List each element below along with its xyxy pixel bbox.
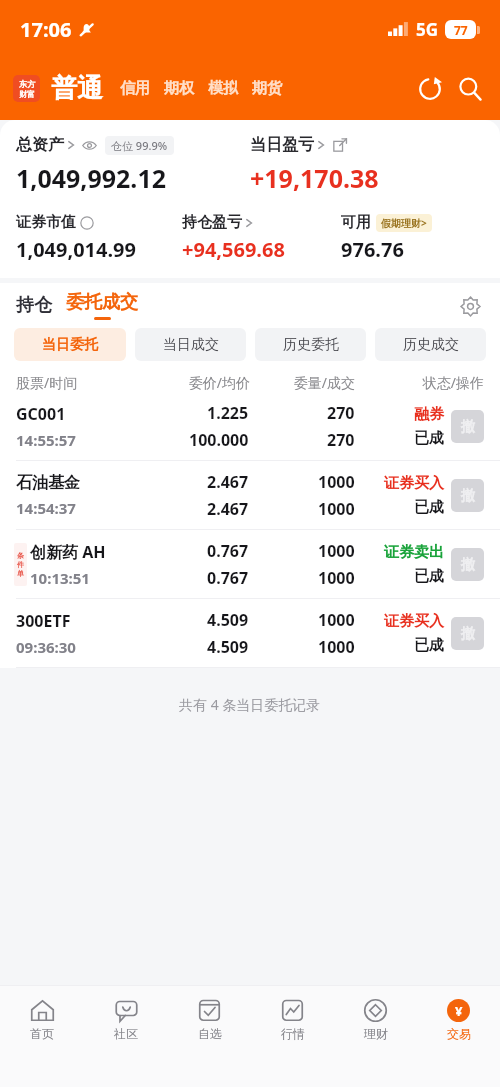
- staticText: 2.467: [207, 498, 249, 520]
- button[interactable]: 普通: [51, 72, 103, 105]
- staticText: 行情: [281, 1026, 305, 1041]
- staticText: 委量/成交: [250, 373, 355, 392]
- button[interactable]: 当日委托: [14, 328, 126, 361]
- staticText: 77: [454, 22, 468, 38]
- staticText: 4.509: [207, 609, 249, 631]
- button[interactable]: 持仓: [16, 294, 52, 317]
- button[interactable]: 东方财富: [13, 75, 40, 102]
- staticText: 1000: [318, 567, 355, 589]
- staticText: 证券买入: [384, 612, 444, 631]
- staticText: 14:54:37: [16, 498, 76, 518]
- staticText: 期权: [164, 79, 194, 98]
- staticText: 信用: [120, 79, 150, 98]
- staticText: 融券: [414, 405, 444, 424]
- staticText: 持仓: [16, 294, 52, 317]
- button[interactable]: Settings: [456, 292, 484, 320]
- staticText: 委托成交: [66, 291, 138, 314]
- button[interactable]: 当日成交: [135, 328, 246, 361]
- staticText: 仓位 99.9%: [111, 138, 168, 153]
- button[interactable]: 行情: [251, 986, 334, 1052]
- staticText: 期货: [252, 79, 282, 98]
- staticText: 270: [327, 402, 355, 424]
- staticText: 证券市值: [16, 213, 76, 232]
- staticText: 100.000: [189, 429, 249, 451]
- staticText: 已成: [414, 498, 444, 517]
- button[interactable]: Refresh: [414, 73, 445, 104]
- staticText: +94,569.68: [182, 236, 285, 263]
- staticText: 已成: [414, 429, 444, 448]
- button[interactable]: 期权: [157, 79, 201, 98]
- button[interactable]: 社区: [84, 986, 168, 1052]
- button[interactable]: 石油基金: [0, 461, 500, 530]
- staticText: 0.767: [207, 567, 249, 589]
- staticText: 模拟: [208, 79, 238, 98]
- staticText: 撤: [461, 625, 475, 643]
- staticText: 历史成交: [403, 336, 459, 354]
- staticText: 理财: [364, 1026, 388, 1041]
- staticText: 1000: [318, 540, 355, 562]
- staticText: 1000: [318, 498, 355, 520]
- staticText: +19,170.38: [250, 161, 379, 195]
- staticText: 普通: [51, 72, 103, 105]
- staticText: 交易: [447, 1026, 471, 1041]
- staticText: 10:13:51: [30, 568, 90, 588]
- staticText: 件: [17, 560, 24, 569]
- staticText: 5G: [416, 18, 439, 41]
- staticText: 东方: [19, 79, 35, 89]
- staticText: 证券买入: [384, 474, 444, 493]
- staticText: 假期理财>: [381, 216, 427, 230]
- staticText: 4.509: [207, 636, 249, 658]
- button[interactable]: 撤: [451, 548, 484, 581]
- staticText: 17:06: [20, 16, 72, 43]
- staticText: 证券卖出: [384, 543, 444, 562]
- staticText: 财富: [19, 89, 35, 99]
- staticText: 社区: [114, 1026, 138, 1041]
- staticText: 创新药 AH: [30, 541, 106, 563]
- button[interactable]: 撤: [451, 410, 484, 443]
- staticText: 委价/均价: [145, 373, 250, 392]
- button[interactable]: 历史成交: [375, 328, 486, 361]
- staticText: 当日盈亏: [250, 135, 314, 155]
- staticText: 1000: [318, 609, 355, 631]
- staticText: 270: [327, 429, 355, 451]
- staticText: 股票/时间: [16, 373, 145, 392]
- button[interactable]: 理财: [334, 986, 417, 1052]
- staticText: 历史委托: [283, 336, 339, 354]
- staticText: 总资产: [16, 135, 64, 155]
- staticText: 共有 4 条当日委托记录: [179, 695, 321, 714]
- button[interactable]: 信用: [113, 79, 157, 98]
- button[interactable]: 首页: [0, 986, 84, 1052]
- staticText: GC001: [16, 403, 66, 425]
- button[interactable]: 撤: [451, 617, 484, 650]
- staticText: 首页: [30, 1026, 54, 1041]
- button[interactable]: 期货: [245, 79, 289, 98]
- staticText: ¥: [455, 1002, 463, 1020]
- button[interactable]: Search: [454, 73, 485, 104]
- staticText: 976.76: [341, 236, 404, 263]
- staticText: 单: [17, 569, 24, 578]
- button[interactable]: 300ETF: [0, 599, 500, 668]
- button[interactable]: 条: [0, 530, 500, 599]
- staticText: 已成: [414, 567, 444, 586]
- staticText: 条: [17, 551, 24, 560]
- staticText: 状态/操作: [355, 373, 484, 392]
- staticText: 1000: [318, 471, 355, 493]
- staticText: 0.767: [207, 540, 249, 562]
- button[interactable]: GC001: [0, 392, 500, 461]
- staticText: 当日成交: [163, 336, 219, 354]
- button[interactable]: 委托成交: [66, 291, 138, 320]
- staticText: 1,049,014.99: [16, 236, 136, 263]
- staticText: 1.225: [207, 402, 249, 424]
- staticText: 撤: [461, 418, 475, 436]
- button[interactable]: 自选: [168, 986, 251, 1052]
- staticText: 300ETF: [16, 610, 71, 632]
- button[interactable]: 撤: [451, 479, 484, 512]
- button[interactable]: 假期理财>: [376, 214, 432, 232]
- button[interactable]: 模拟: [201, 79, 245, 98]
- staticText: 09:36:30: [16, 637, 76, 657]
- staticText: 当日委托: [42, 336, 98, 354]
- staticText: 撤: [461, 487, 475, 505]
- button[interactable]: ¥: [417, 986, 500, 1052]
- button[interactable]: 历史委托: [255, 328, 366, 361]
- staticText: 持仓盈亏: [182, 213, 242, 232]
